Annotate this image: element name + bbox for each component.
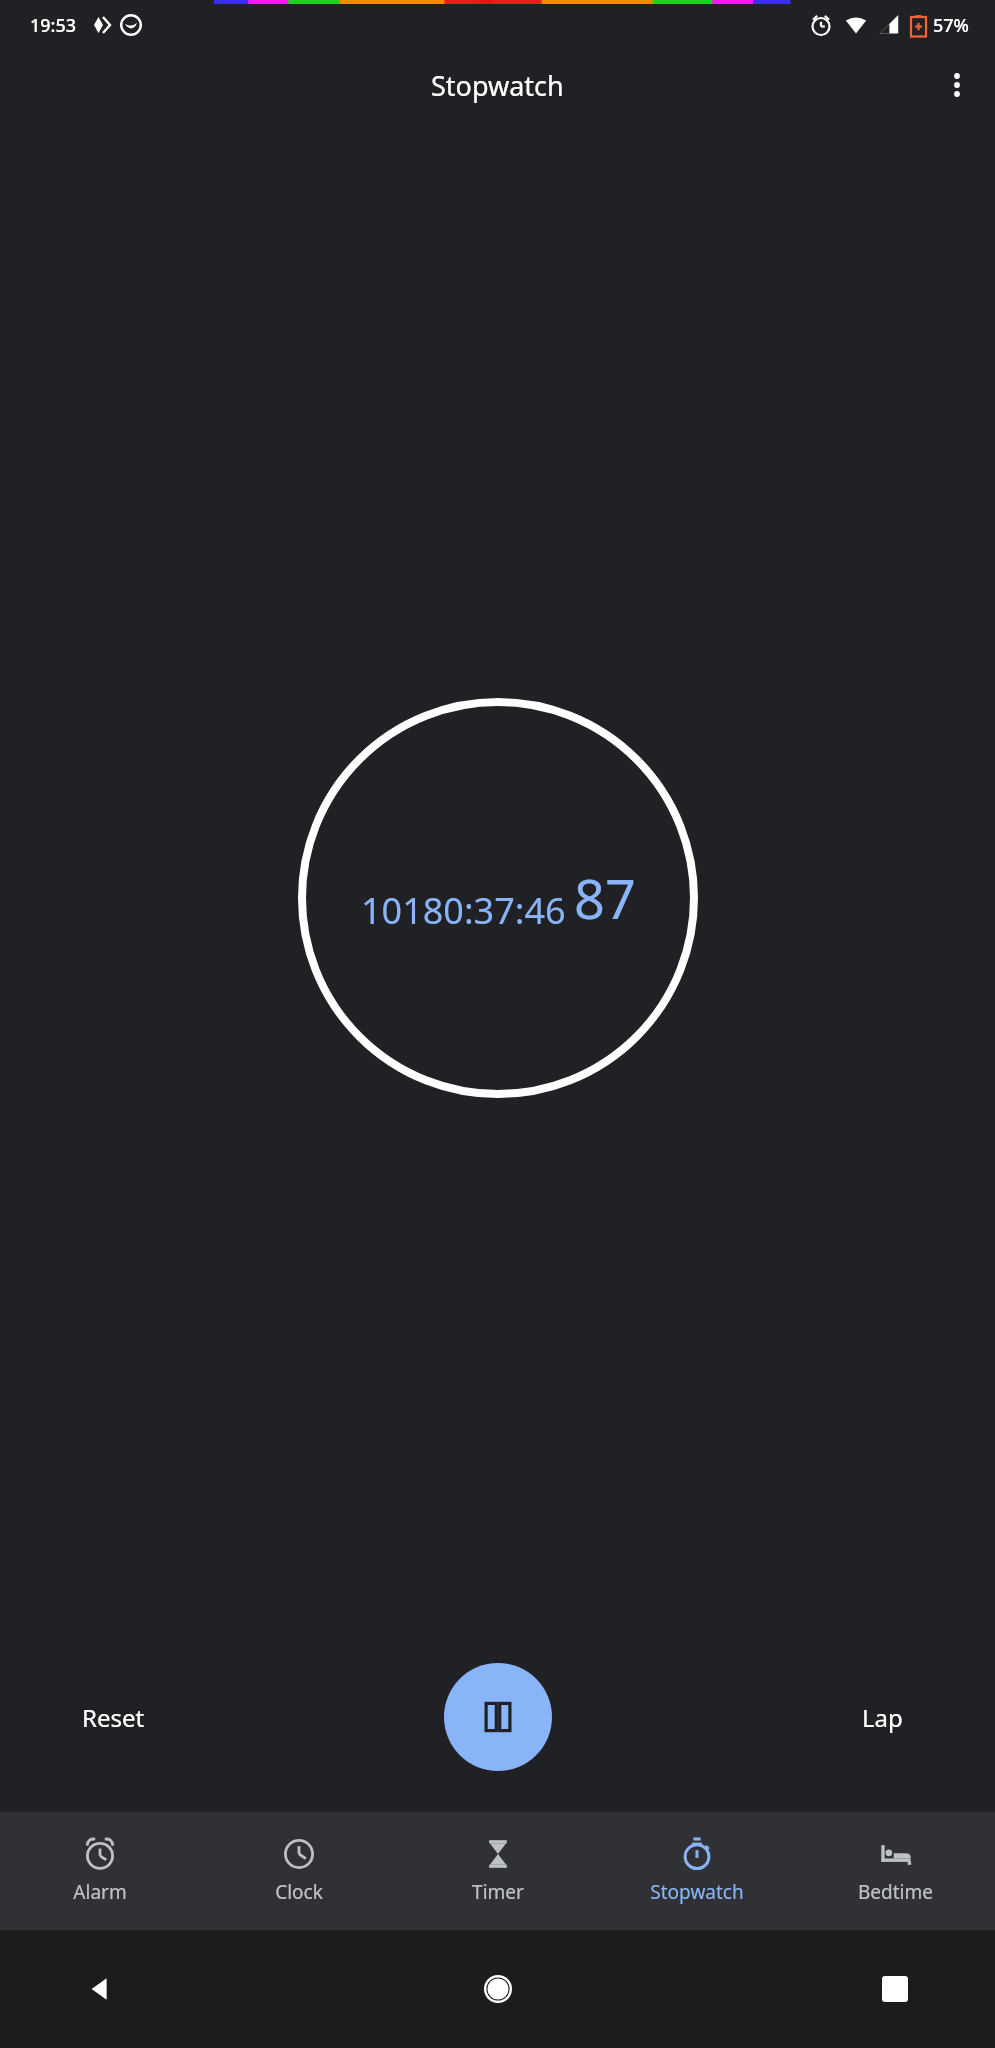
staticText: 87 — [574, 861, 636, 935]
button[interactable]: Stopwatch — [597, 1812, 796, 1930]
staticText: Stopwatch — [431, 67, 564, 104]
button[interactable]: Back — [0, 1930, 200, 2048]
staticText: 57% — [933, 13, 969, 38]
button[interactable]: Home — [398, 1930, 598, 2048]
staticText: Clock — [275, 1879, 323, 1905]
staticText: Timer — [472, 1879, 524, 1905]
button[interactable]: Lap — [840, 1689, 925, 1746]
button[interactable]: More options — [933, 61, 981, 109]
staticText: Alarm — [73, 1879, 127, 1905]
staticText: Reset — [82, 1701, 145, 1734]
button[interactable]: Bedtime — [796, 1812, 995, 1930]
staticText: Stopwatch — [650, 1879, 744, 1905]
button[interactable]: Pause — [444, 1663, 552, 1771]
button[interactable]: Alarm — [0, 1812, 199, 1930]
button[interactable]: Clock — [199, 1812, 398, 1930]
button[interactable]: Recent apps — [795, 1930, 995, 2048]
staticText: 19:53 — [30, 13, 77, 38]
button[interactable]: Reset — [60, 1689, 167, 1746]
button[interactable]: Timer — [398, 1812, 597, 1930]
staticText: Bedtime — [858, 1879, 933, 1905]
staticText: Lap — [862, 1701, 903, 1734]
staticText: 10180:37:46 — [361, 886, 566, 935]
